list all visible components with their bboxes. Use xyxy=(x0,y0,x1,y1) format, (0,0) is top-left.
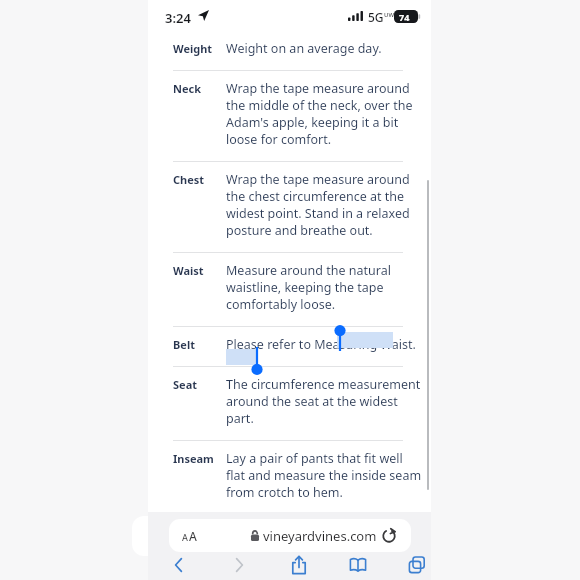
staticText: Measure around the natural xyxy=(226,262,391,279)
staticText: 74 xyxy=(399,11,410,23)
button[interactable]: Weight xyxy=(148,30,431,70)
button[interactable]: Inseam xyxy=(148,440,431,514)
staticText: around the seat at the widest xyxy=(226,393,398,410)
staticText: A xyxy=(189,528,197,544)
staticText: Wrap the tape measure around xyxy=(226,80,410,97)
button[interactable]: A xyxy=(169,519,411,552)
staticText: The circumference measurement xyxy=(226,376,421,393)
staticText: Seat xyxy=(173,377,197,392)
button[interactable]: Neck xyxy=(148,70,431,161)
staticText: 5G xyxy=(368,9,384,25)
button[interactable]: Share xyxy=(282,552,316,578)
staticText: 3:24 xyxy=(165,9,191,27)
staticText: UW xyxy=(384,11,395,19)
staticText: A xyxy=(182,531,188,543)
staticText: loose for comfort. xyxy=(226,131,332,148)
staticText: the chest circumference at the xyxy=(226,188,405,205)
button[interactable]: Belt xyxy=(148,326,431,366)
staticText: part. xyxy=(226,410,254,427)
staticText: Weight on an average day. xyxy=(226,40,382,57)
staticText: posture and breathe out. xyxy=(226,222,373,239)
staticText: widest point. Stand in a relaxed xyxy=(226,205,410,222)
button[interactable]: Seat xyxy=(148,366,431,440)
staticText: Belt xyxy=(173,337,195,352)
staticText: Waist xyxy=(173,263,204,278)
staticText: around the elbow to the wrist xyxy=(226,558,400,575)
staticText: from crotch to hem. xyxy=(226,484,343,501)
button[interactable]: Back xyxy=(162,552,196,578)
staticText: measure from back center of neck xyxy=(226,541,427,558)
staticText: Adam's apple, keeping it a bit xyxy=(226,114,399,131)
button[interactable]: Waist xyxy=(148,252,431,326)
staticText: Please refer to Measuring Waist. xyxy=(226,336,416,353)
staticText: Sleeve xyxy=(173,525,209,540)
button[interactable]: Bookmarks xyxy=(341,552,375,578)
staticText: Chest xyxy=(173,172,205,187)
staticText: flat and measure the inside seam xyxy=(226,467,422,484)
staticText: the middle of the neck, over the xyxy=(226,97,413,114)
staticText: Wrap the tape measure around xyxy=(226,171,410,188)
staticText: vineyardvines.com xyxy=(263,527,377,545)
staticText: waistline, keeping the tape xyxy=(226,279,384,296)
staticText: Inseam xyxy=(173,451,214,466)
staticText: Neck xyxy=(173,81,202,96)
staticText: Weight xyxy=(173,41,213,56)
staticText: With forearm parallel to chest, xyxy=(226,524,404,541)
button[interactable]: Forward xyxy=(222,552,256,578)
staticText: comfortably loose. xyxy=(226,296,336,313)
button[interactable]: Sleeve xyxy=(148,514,431,580)
staticText: Lay a pair of pants that fit well xyxy=(226,450,403,467)
button[interactable]: Chest xyxy=(148,161,431,252)
button[interactable]: Reload page xyxy=(380,527,398,545)
button[interactable]: Tabs xyxy=(400,552,434,578)
